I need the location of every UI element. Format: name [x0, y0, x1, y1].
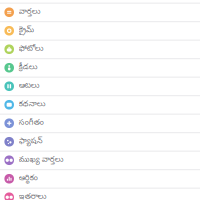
staticText: క్రీడలు: [19, 62, 38, 73]
staticText: ఫోటోలు: [19, 44, 44, 54]
button[interactable]: ఫోటోలు: [0, 40, 200, 58]
button[interactable]: ఆర్థికం: [0, 169, 200, 188]
button[interactable]: వార్తలు: [0, 3, 200, 21]
staticText: ముఖ్య వార్తలు: [19, 155, 64, 165]
staticText: కథనాలు: [19, 99, 46, 110]
staticText: క్రైమ్: [19, 25, 34, 36]
button[interactable]: సంగీతం: [0, 114, 200, 132]
staticText: వార్తలు: [19, 7, 41, 17]
staticText: ఇతరాలు: [19, 192, 47, 200]
button[interactable]: ముఖ్య వార్తలు: [0, 151, 200, 169]
button[interactable]: ఆటలు: [0, 77, 200, 95]
staticText: ఆటలు: [19, 81, 40, 91]
staticText: ఫ్యాషన్: [19, 136, 43, 147]
staticText: సంగీతం: [19, 118, 44, 128]
button[interactable]: క్రైమ్: [0, 21, 200, 40]
button[interactable]: కథనాలు: [0, 95, 200, 114]
button[interactable]: ఇతరాలు: [0, 188, 200, 200]
button[interactable]: ఫ్యాషన్: [0, 132, 200, 151]
button[interactable]: క్రీడలు: [0, 58, 200, 77]
staticText: ఆర్థికం: [19, 173, 38, 184]
